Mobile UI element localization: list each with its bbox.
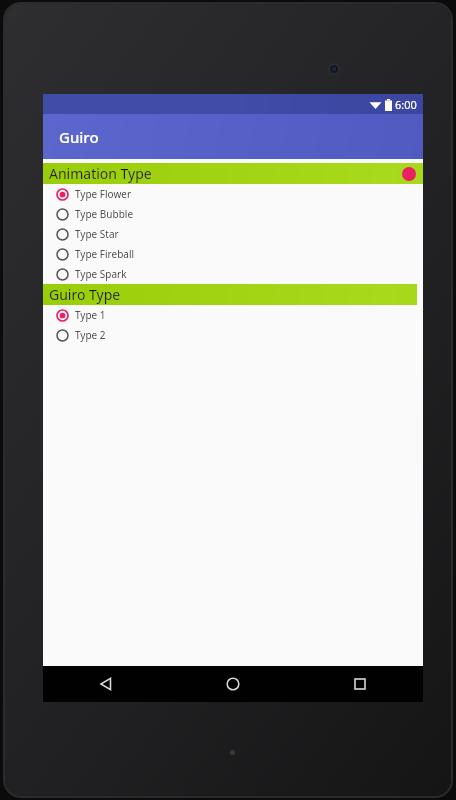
button[interactable]: Color preview xyxy=(402,167,416,181)
staticText: Guiro xyxy=(59,127,99,147)
staticText: Type Star xyxy=(75,227,119,241)
button[interactable]: Animation Type xyxy=(43,163,423,184)
staticText: Animation Type xyxy=(49,164,152,183)
button[interactable]: Type Spark xyxy=(43,264,423,284)
button[interactable]: Recent apps xyxy=(296,666,423,702)
button[interactable]: Type 1 xyxy=(43,305,423,325)
button[interactable]: Guiro Type xyxy=(43,284,417,305)
staticText: Type Fireball xyxy=(75,247,135,261)
button[interactable]: Back xyxy=(43,666,169,702)
staticText: Guiro Type xyxy=(49,285,121,304)
staticText: Type Bubble xyxy=(75,207,134,221)
button[interactable]: Type Bubble xyxy=(43,204,423,224)
button[interactable]: Type Flower xyxy=(43,184,423,204)
staticText: Type Spark xyxy=(75,267,127,281)
staticText: Type Flower xyxy=(75,187,132,201)
staticText: 6:00 xyxy=(395,97,417,112)
staticText: Type 2 xyxy=(75,328,106,342)
button[interactable]: Type 2 xyxy=(43,325,423,345)
button[interactable]: Home xyxy=(169,666,296,702)
button[interactable]: Type Fireball xyxy=(43,244,423,264)
button[interactable]: Type Star xyxy=(43,224,423,244)
staticText: Type 1 xyxy=(75,308,106,322)
